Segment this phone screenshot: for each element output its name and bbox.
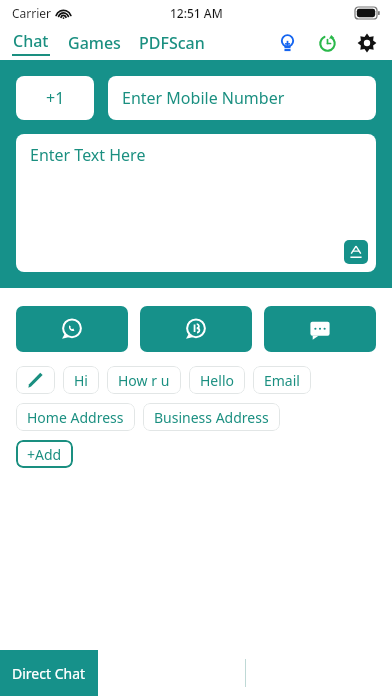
button[interactable]: PDFScan — [137, 28, 207, 58]
button[interactable]: Chat — [10, 30, 52, 56]
staticText: Home Address — [27, 408, 124, 427]
button[interactable]: Enter Mobile Number — [108, 76, 376, 120]
staticText: Business Address — [154, 408, 269, 427]
button[interactable]: Direct Chat — [0, 650, 98, 696]
button[interactable]: Games — [66, 28, 123, 58]
staticText: Games — [68, 32, 121, 54]
staticText: Enter Text Here — [30, 144, 146, 166]
staticText: Hi — [74, 371, 88, 390]
staticText: +1 — [46, 87, 65, 109]
button[interactable]: History — [312, 28, 342, 58]
staticText: Carrier — [12, 5, 52, 21]
button[interactable]: Hello — [189, 366, 245, 394]
staticText: Direct Chat — [12, 664, 86, 683]
button[interactable]: WhatsApp Business — [140, 306, 252, 352]
staticText: How r u — [118, 371, 170, 390]
button[interactable]: Settings — [352, 28, 382, 58]
button[interactable]: Enter Text Here — [16, 134, 376, 272]
staticText: PDFScan — [139, 32, 205, 54]
button[interactable]: WhatsApp — [16, 306, 128, 352]
button[interactable]: Formatting — [344, 240, 368, 264]
button[interactable]: Tips — [272, 28, 302, 58]
button[interactable]: How r u — [107, 366, 181, 394]
button[interactable]: +Add — [16, 440, 73, 468]
button[interactable]: Home Address — [16, 403, 135, 431]
staticText: Email — [264, 371, 300, 390]
staticText: Enter Mobile Number — [122, 87, 285, 109]
button[interactable] — [16, 366, 55, 394]
staticText: 12:51 AM — [170, 5, 223, 21]
staticText: +Add — [27, 445, 62, 464]
button[interactable]: Hi — [63, 366, 99, 394]
staticText: Chat — [13, 30, 49, 52]
button[interactable]: +1 — [16, 76, 94, 120]
button[interactable]: Business Address — [143, 403, 280, 431]
button[interactable]: SMS — [264, 306, 376, 352]
staticText: Hello — [200, 371, 234, 390]
button[interactable]: Email — [253, 366, 311, 394]
